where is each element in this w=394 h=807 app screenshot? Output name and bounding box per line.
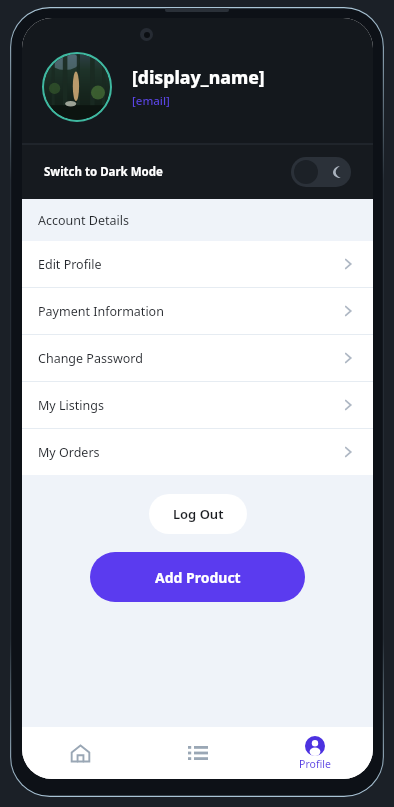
button[interactable]: Listings (139, 727, 256, 779)
staticText: Change Password (38, 350, 143, 367)
staticText: Log Out (173, 505, 224, 523)
button[interactable]: Toggle dark mode (291, 157, 351, 187)
button[interactable]: Edit Profile (22, 241, 373, 287)
button[interactable]: Log Out (149, 494, 247, 534)
button[interactable]: Change Password (22, 335, 373, 381)
staticText: Account Details (38, 212, 129, 229)
staticText: Add Product (155, 568, 241, 587)
staticText: Switch to Dark Mode (44, 164, 163, 180)
button[interactable]: My Listings (22, 382, 373, 428)
button[interactable]: Switch to Dark Mode (22, 144, 373, 199)
button[interactable]: Profile (256, 727, 373, 779)
button[interactable]: Payment Information (22, 288, 373, 334)
staticText: [display_name] (132, 65, 265, 89)
button[interactable]: My Orders (22, 429, 373, 475)
staticText: [email] (132, 93, 170, 109)
button[interactable]: Add Product (90, 552, 305, 602)
button[interactable]: Home (22, 727, 139, 779)
staticText: Profile (299, 757, 331, 771)
staticText: My Orders (38, 444, 100, 461)
staticText: Payment Information (38, 303, 164, 320)
staticText: My Listings (38, 397, 104, 414)
staticText: Edit Profile (38, 256, 102, 273)
